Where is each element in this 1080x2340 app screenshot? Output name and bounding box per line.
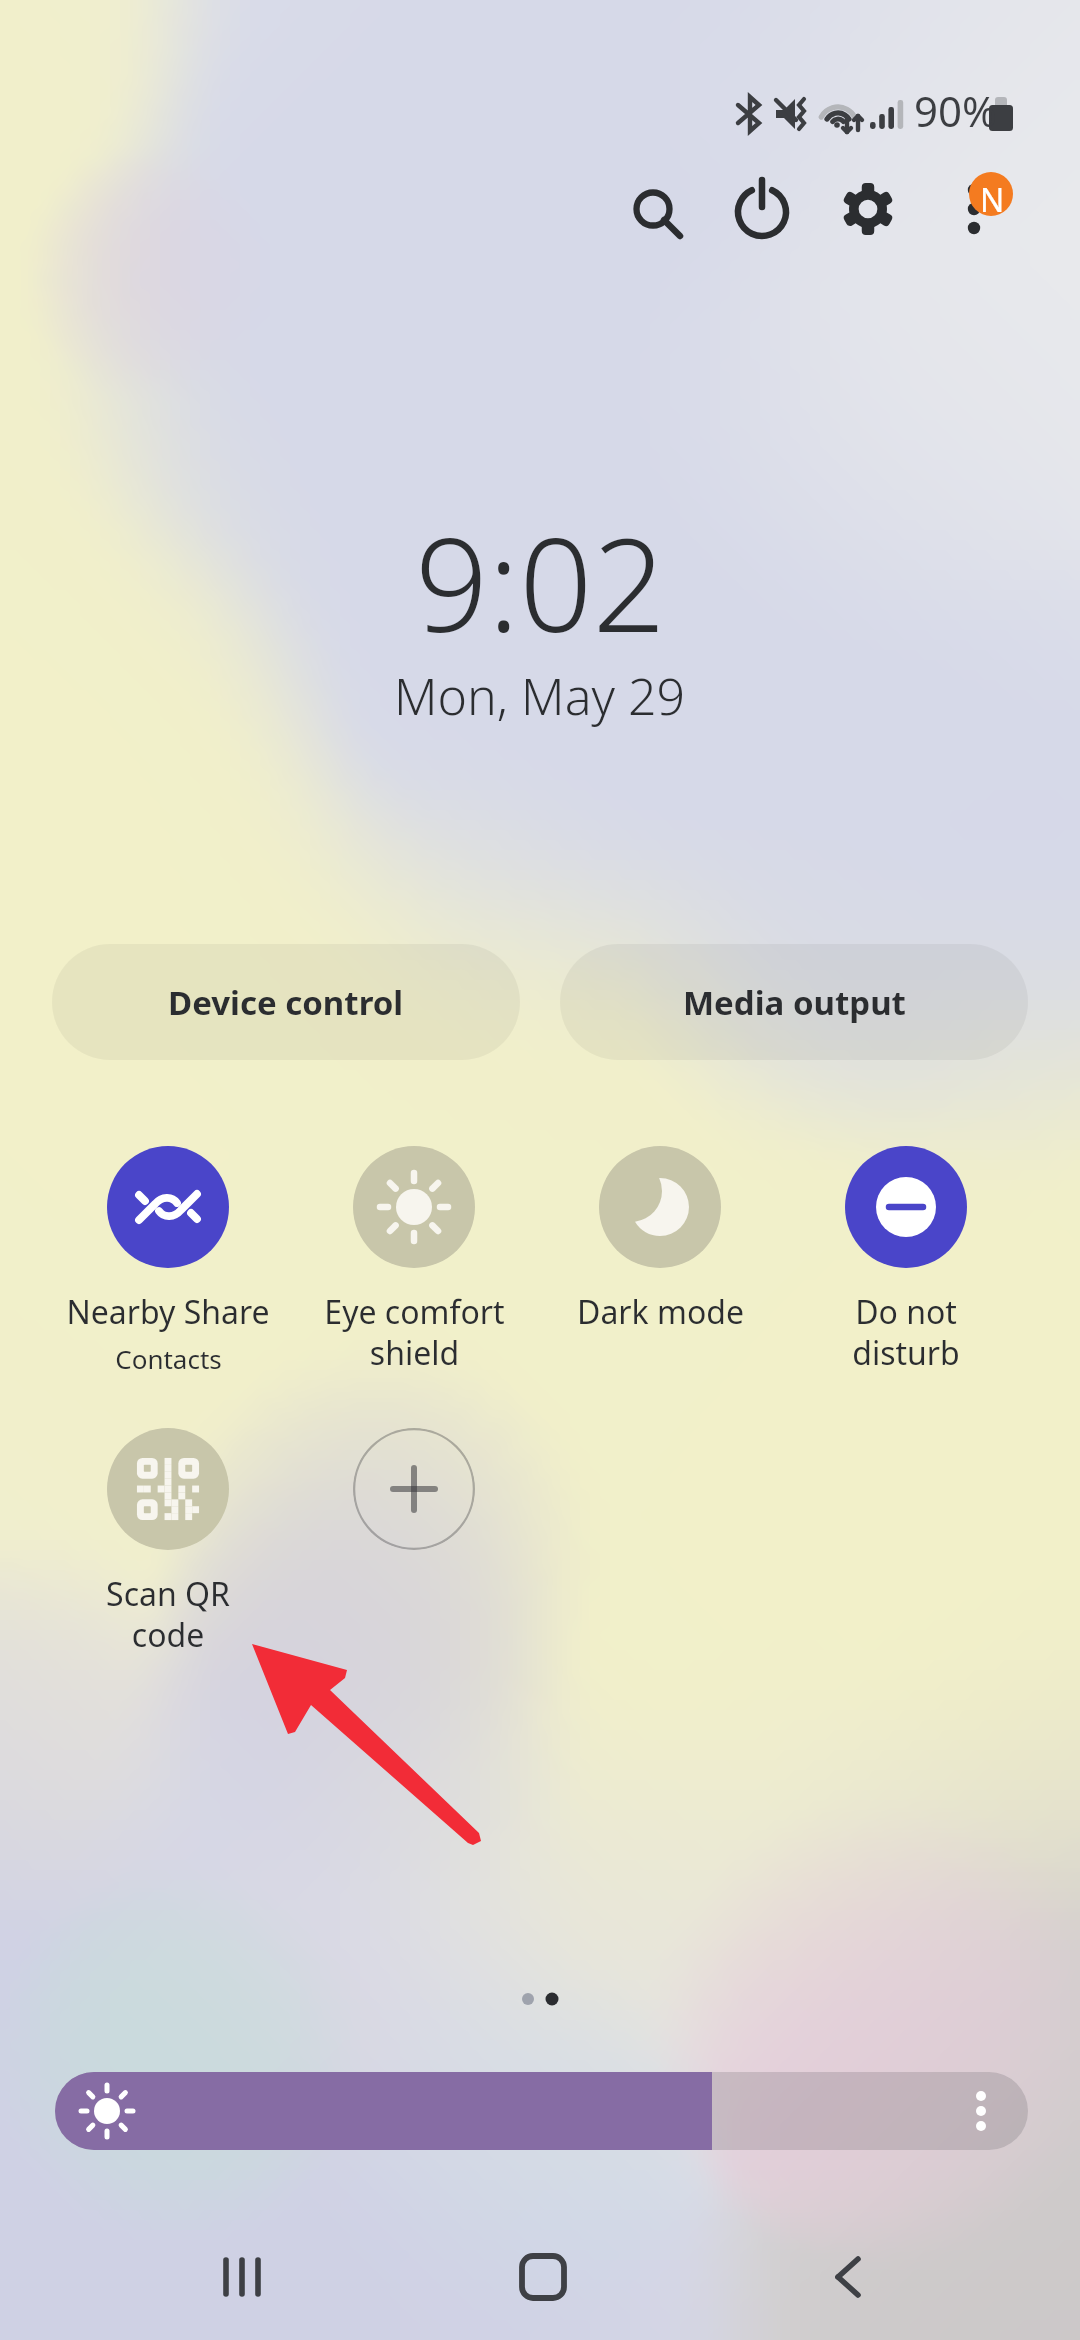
button[interactable]: Search [607, 163, 699, 255]
button[interactable]: Power off [716, 163, 808, 255]
button[interactable]: Settings [822, 163, 914, 255]
staticText: Scan QR code [106, 1572, 230, 1657]
button[interactable]: More options [928, 163, 1020, 255]
button[interactable]: Device control [52, 944, 520, 1060]
staticText: Nearby Share [66, 1290, 270, 1334]
staticText: Mon, May 29 [394, 662, 686, 730]
button[interactable]: Eye comfort shield [304, 1146, 524, 1375]
button[interactable]: Media output [560, 944, 1028, 1060]
button[interactable]: Back [784, 2217, 904, 2337]
staticText: Dark mode [577, 1290, 744, 1334]
staticText: Eye comfort shield [324, 1290, 505, 1375]
staticText: Contacts [115, 1341, 222, 1376]
staticText: Device control [168, 980, 404, 1025]
staticText: Do not disturb [852, 1290, 960, 1375]
staticText: Media output [683, 980, 906, 1025]
button[interactable]: Recent apps [182, 2217, 302, 2337]
button[interactable]: Add tile [353, 1428, 475, 1550]
button[interactable]: Do not disturb [796, 1146, 1016, 1375]
staticText: N [980, 178, 1005, 222]
button[interactable]: Brightness [55, 2072, 1028, 2150]
staticText: 90% [914, 82, 997, 139]
button[interactable]: Scan QR code [58, 1428, 278, 1657]
staticText: 9:02 [415, 495, 666, 669]
button[interactable]: Nearby Share [58, 1146, 278, 1376]
button[interactable]: Dark mode [550, 1146, 770, 1334]
button[interactable]: Home [483, 2217, 603, 2337]
